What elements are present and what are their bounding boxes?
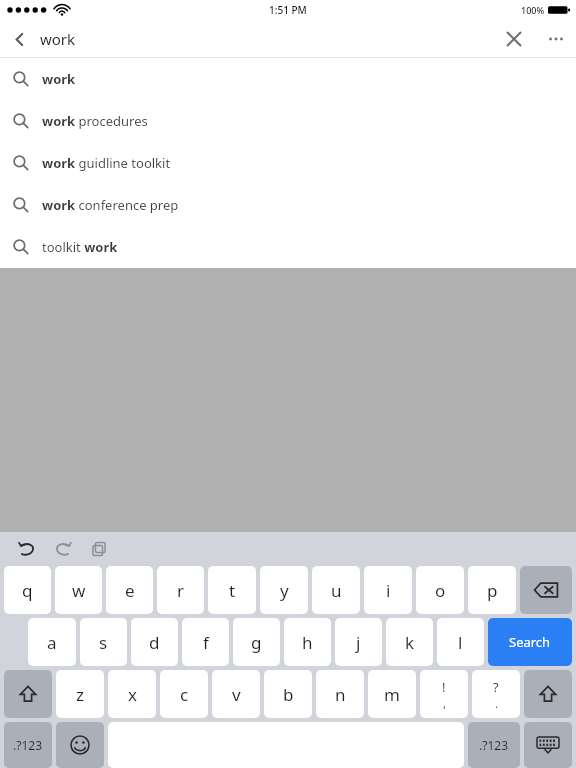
button[interactable]: v	[212, 670, 260, 718]
button[interactable]: m	[368, 670, 416, 718]
button[interactable]: c	[160, 670, 208, 718]
staticText: c	[180, 683, 189, 706]
staticText: .?123	[479, 737, 509, 753]
button[interactable]: q	[4, 566, 51, 614]
button[interactable]: u	[312, 566, 360, 614]
staticText: b	[283, 683, 294, 706]
staticText: q	[22, 579, 33, 602]
button[interactable]: d	[131, 618, 178, 666]
button[interactable]: Clipboard	[84, 534, 114, 564]
staticText: 1:51 PM	[269, 3, 307, 17]
button[interactable]: Clear	[492, 20, 536, 58]
staticText: work	[42, 70, 76, 88]
staticText: z	[76, 683, 84, 706]
button[interactable]: Shift	[524, 670, 572, 718]
button[interactable]: k	[386, 618, 433, 666]
button[interactable]: p	[468, 566, 516, 614]
button[interactable]: work guidline toolkit	[0, 142, 576, 184]
staticText: ?	[493, 678, 499, 696]
button[interactable]: Undo	[12, 534, 42, 564]
staticText: work procedures	[42, 112, 148, 130]
button[interactable]: e	[106, 566, 153, 614]
button[interactable]: t	[208, 566, 256, 614]
button[interactable]: y	[260, 566, 308, 614]
button[interactable]: ?	[472, 670, 520, 718]
button[interactable]: Shift	[4, 670, 52, 718]
button[interactable]: i	[364, 566, 412, 614]
button[interactable]: toolkit work	[0, 226, 576, 268]
staticText: v	[232, 683, 241, 706]
staticText: g	[251, 631, 262, 654]
staticText: s	[99, 631, 108, 654]
button[interactable]: !	[420, 670, 468, 718]
button[interactable]: .?123	[4, 722, 52, 768]
button[interactable]: Search	[488, 618, 572, 666]
button[interactable]: Backspace	[520, 566, 572, 614]
button[interactable]: work	[0, 58, 576, 100]
staticText: p	[487, 579, 498, 602]
button[interactable]: More options	[536, 20, 576, 58]
staticText: work	[40, 29, 76, 49]
button[interactable]: h	[284, 618, 331, 666]
staticText: x	[128, 683, 137, 706]
button[interactable]: f	[182, 618, 229, 666]
staticText: h	[302, 631, 313, 654]
staticText: d	[149, 631, 160, 654]
staticText: i	[386, 579, 391, 602]
button[interactable]: j	[335, 618, 382, 666]
button[interactable]: z	[56, 670, 104, 718]
button[interactable]: Back	[0, 20, 38, 58]
staticText: ,	[443, 696, 446, 711]
staticText: work conference prep	[42, 196, 179, 214]
staticText: t	[229, 579, 236, 602]
staticText: a	[47, 631, 57, 654]
staticText: m	[384, 683, 400, 706]
staticText: r	[177, 579, 185, 602]
staticText: 100%	[521, 4, 545, 16]
staticText: f	[203, 631, 209, 654]
button[interactable]: x	[108, 670, 156, 718]
button[interactable]: l	[437, 618, 484, 666]
staticText: k	[405, 631, 415, 654]
button[interactable]: work conference prep	[0, 184, 576, 226]
button[interactable]: Hide keyboard	[524, 722, 572, 768]
staticText: j	[356, 631, 361, 654]
staticText: u	[331, 579, 342, 602]
staticText: work guidline toolkit	[42, 154, 171, 172]
button[interactable]: w	[55, 566, 102, 614]
staticText: o	[435, 579, 446, 602]
staticText: y	[280, 579, 289, 602]
staticText: .?123	[13, 737, 43, 753]
staticText: !	[442, 678, 446, 696]
staticText: e	[125, 579, 135, 602]
staticText: toolkit work	[42, 238, 118, 256]
button[interactable]: a	[28, 618, 76, 666]
button[interactable]: .?123	[468, 722, 520, 768]
button[interactable]: s	[80, 618, 127, 666]
staticText: w	[72, 579, 86, 602]
staticText: l	[458, 631, 463, 654]
button[interactable]: r	[157, 566, 204, 614]
staticText: Search	[509, 633, 551, 651]
button[interactable]: Redo	[48, 534, 78, 564]
button[interactable]: g	[233, 618, 280, 666]
staticText: .	[495, 696, 498, 711]
button[interactable]: n	[316, 670, 364, 718]
button[interactable]: b	[264, 670, 312, 718]
button[interactable]: Emoji	[56, 722, 104, 768]
button[interactable]: work procedures	[0, 100, 576, 142]
staticText: n	[335, 683, 346, 706]
button[interactable]: o	[416, 566, 464, 614]
